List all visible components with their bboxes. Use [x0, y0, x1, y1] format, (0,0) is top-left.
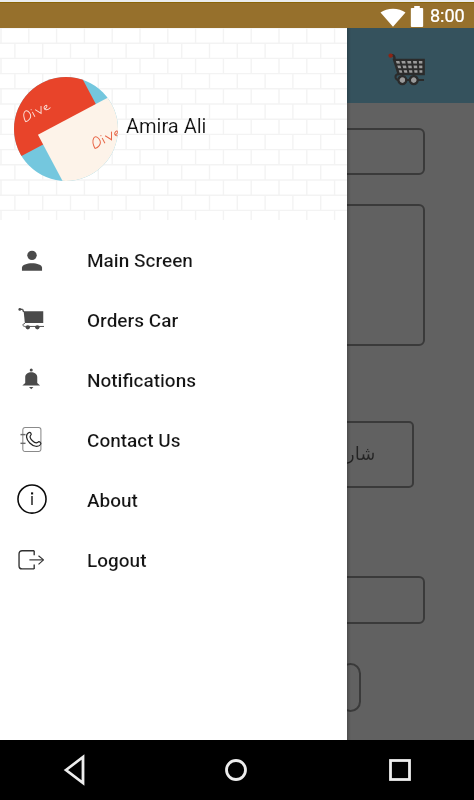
button[interactable]: Back — [48, 740, 104, 800]
staticText: Main Screen — [87, 249, 193, 271]
button[interactable] — [340, 663, 361, 712]
staticText: Contact Us — [87, 429, 181, 451]
staticText: Notifications — [87, 369, 196, 391]
button[interactable]: About — [0, 470, 347, 530]
button[interactable] — [347, 28, 474, 103]
button[interactable]: Recent apps — [372, 740, 428, 800]
button[interactable] — [340, 204, 425, 346]
button[interactable]: Shopping cart — [378, 41, 430, 93]
button[interactable]: Main Screen — [0, 230, 347, 290]
staticText: 8:00 — [430, 5, 465, 26]
staticText: Logout — [87, 549, 147, 571]
staticText: About — [87, 489, 138, 511]
button[interactable]: Profile picture — [14, 77, 118, 181]
button[interactable] — [340, 128, 425, 175]
staticText: Orders Car — [87, 309, 179, 331]
button[interactable] — [340, 576, 425, 624]
button[interactable] — [340, 421, 414, 488]
button[interactable]: Orders Car — [0, 290, 347, 350]
staticText: Amira Ali — [126, 114, 207, 137]
button[interactable]: Contact Us — [0, 410, 347, 470]
staticText: شار — [346, 443, 376, 464]
button[interactable]: Logout — [0, 530, 347, 590]
button[interactable]: Home — [208, 740, 264, 800]
button[interactable]: Notifications — [0, 350, 347, 410]
